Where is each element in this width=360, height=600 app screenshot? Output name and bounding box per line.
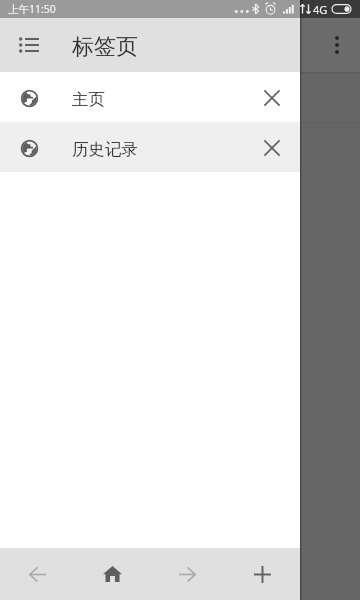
staticText: 标签页 (72, 33, 138, 61)
button[interactable]: 主页 (0, 72, 300, 122)
staticText: 历史记录 (72, 139, 138, 160)
button[interactable]: Close tab (244, 72, 300, 122)
staticText: 4G (313, 2, 328, 17)
button[interactable]: Home (75, 548, 150, 600)
button[interactable]: 历史记录 (0, 122, 300, 172)
button[interactable]: More options (322, 30, 352, 60)
staticText: 上午11:50 (8, 2, 56, 16)
button[interactable]: Tabs (9, 25, 49, 65)
button[interactable]: New tab (225, 548, 300, 600)
button[interactable]: Back (0, 548, 75, 600)
staticText: 主页 (72, 89, 105, 110)
button[interactable]: Forward (150, 548, 225, 600)
button[interactable]: Close tab (244, 122, 300, 172)
